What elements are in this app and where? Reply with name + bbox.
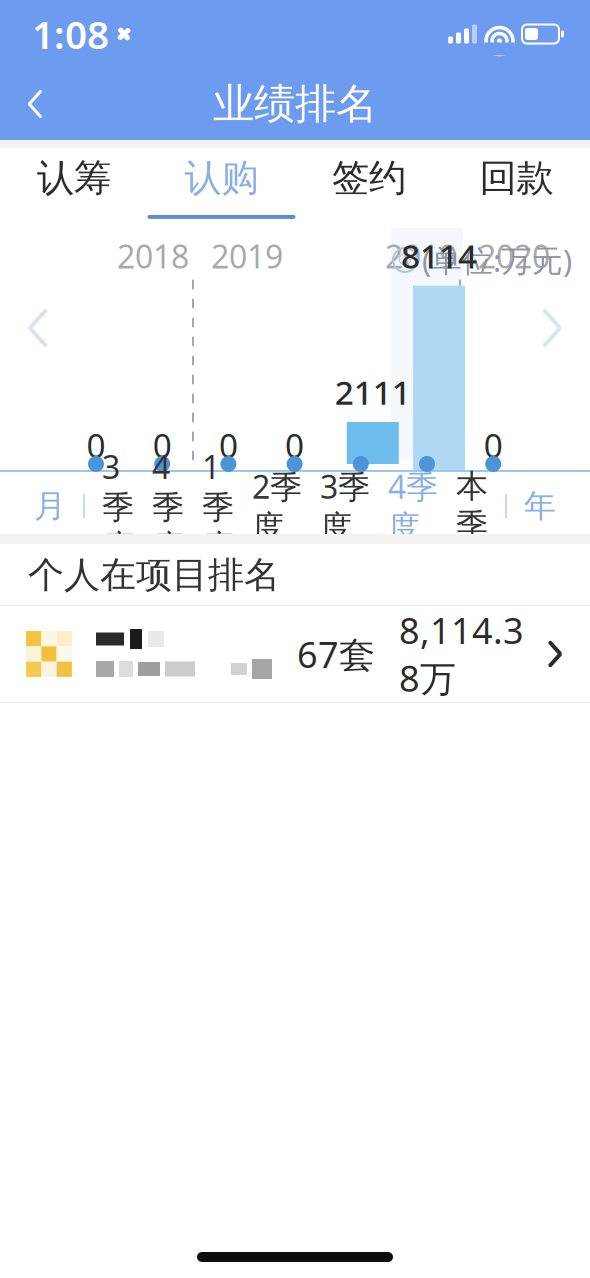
- button[interactable]: 本季: [447, 478, 497, 534]
- staticText: [356, 423, 365, 467]
- staticText: 2019: [211, 235, 283, 277]
- button[interactable]: 返回: [0, 68, 70, 140]
- button[interactable]: 4季度: [379, 478, 447, 534]
- staticText: 认购: [184, 155, 258, 201]
- staticText: 2018: [117, 235, 189, 277]
- staticText: 4季度: [152, 445, 184, 566]
- staticText: 2季度: [252, 465, 302, 547]
- staticText: ⏱: [397, 251, 412, 269]
- staticText: 0: [86, 423, 105, 467]
- button[interactable]: 签约: [295, 148, 442, 226]
- staticText: 4季度: [388, 465, 438, 547]
- staticText: 3季度: [320, 465, 370, 547]
- staticText: 认筹: [37, 155, 111, 201]
- button[interactable]: 年: [515, 478, 565, 534]
- button[interactable]: 上一页: [6, 288, 70, 368]
- button[interactable]: 月: [25, 478, 75, 534]
- button[interactable]: 认购: [147, 148, 295, 226]
- button[interactable]: 4季度: [143, 478, 193, 534]
- button[interactable]: 1季度: [193, 478, 243, 534]
- staticText: 1季度: [202, 445, 234, 566]
- button[interactable]: 2季度: [243, 478, 311, 534]
- staticText: 2019: [385, 235, 457, 277]
- staticText: 1:08: [32, 8, 109, 60]
- staticText: 签约: [332, 155, 406, 201]
- staticText: 个人在项目排名: [28, 553, 280, 597]
- staticText: 2111: [335, 370, 411, 414]
- staticText: 0: [153, 423, 172, 467]
- button[interactable]: 下一页: [520, 288, 584, 368]
- staticText: 年: [524, 486, 556, 526]
- button[interactable]: 67套: [0, 606, 590, 702]
- staticText: 67套: [297, 630, 375, 678]
- staticText: 本季: [456, 467, 488, 545]
- button[interactable]: 3季度: [93, 478, 143, 534]
- staticText: 业绩排名: [213, 79, 377, 129]
- button[interactable]: 3季度: [311, 478, 379, 534]
- staticText: 8,114.38万: [399, 606, 524, 702]
- staticText: 0: [285, 423, 304, 467]
- staticText: 8114: [401, 233, 477, 278]
- staticText: 回款: [479, 155, 553, 201]
- staticText: 月: [34, 486, 66, 526]
- staticText: 3季度: [102, 445, 134, 566]
- button[interactable]: 回款: [442, 148, 590, 226]
- staticText: 0: [219, 423, 238, 467]
- staticText: 0: [484, 423, 503, 467]
- staticText: (单位:万元): [422, 240, 572, 280]
- button[interactable]: 认筹: [0, 148, 147, 226]
- staticText: 2020: [478, 235, 550, 277]
- staticText: [422, 423, 431, 467]
